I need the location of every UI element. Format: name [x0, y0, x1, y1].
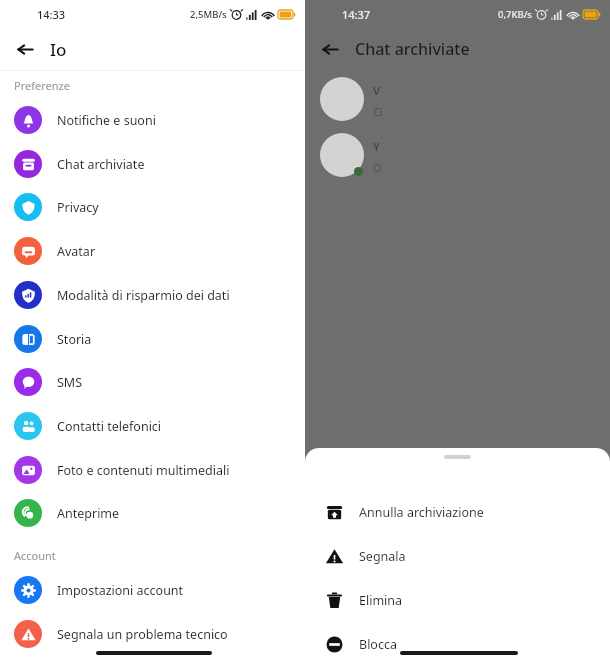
staticText: Chat archiviate [355, 38, 470, 60]
staticText: Anteprime [57, 505, 120, 522]
button[interactable]: V [305, 77, 610, 123]
staticText: Io [50, 38, 67, 61]
staticText: Privacy [57, 199, 99, 216]
staticText: Segnala [359, 548, 406, 565]
staticText: 14:37 [342, 7, 371, 22]
staticText: SMS [57, 374, 83, 391]
button[interactable]: Chat archiviate [0, 142, 305, 186]
staticText: Ci [373, 105, 383, 119]
staticText: 14:33 [37, 7, 66, 22]
button[interactable]: Segnala un problema tecnico [0, 612, 305, 656]
staticText: Modalità di risparmio dei dati [57, 287, 230, 304]
staticText: Notifiche e suoni [57, 112, 156, 129]
button[interactable]: Indietro [313, 32, 347, 66]
staticText: Annulla archiviazione [359, 504, 484, 521]
button[interactable]: Avatar [0, 229, 305, 273]
staticText: Blocca [359, 636, 397, 653]
button[interactable]: Impostazioni account [0, 568, 305, 612]
staticText: Storia [57, 331, 92, 348]
button[interactable]: Segnala [305, 534, 610, 578]
staticText: Avatar [57, 243, 96, 260]
staticText: Foto e contenuti multimediali [57, 462, 230, 479]
staticText: V [373, 83, 381, 99]
button[interactable]: SMS [0, 360, 305, 404]
staticText: Segnala un problema tecnico [57, 626, 228, 643]
staticText: Preferenze [14, 78, 70, 93]
button[interactable]: Foto e contenuti multimediali [0, 448, 305, 492]
staticText: 2,5MB/s [190, 8, 227, 21]
staticText: O [373, 161, 382, 175]
staticText: Elimina [359, 592, 403, 609]
button[interactable]: Indietro [8, 32, 42, 66]
button[interactable]: Elimina [305, 578, 610, 622]
button[interactable]: Blocca [305, 622, 610, 660]
button[interactable]: Y [305, 133, 610, 179]
button[interactable]: Contatti telefonici [0, 404, 305, 448]
button[interactable]: Modalità di risparmio dei dati [0, 273, 305, 317]
staticText: Account [14, 548, 56, 563]
staticText: 0,7KB/s [498, 8, 532, 21]
staticText: Impostazioni account [57, 582, 184, 599]
staticText: Y [373, 139, 380, 155]
button[interactable]: Annulla archiviazione [305, 490, 610, 534]
button[interactable]: Anteprime [0, 491, 305, 535]
button[interactable]: Storia [0, 317, 305, 361]
staticText: Contatti telefonici [57, 418, 162, 435]
staticText: Chat archiviate [57, 156, 145, 173]
button[interactable]: Notifiche e suoni [0, 98, 305, 142]
button[interactable]: Privacy [0, 185, 305, 229]
